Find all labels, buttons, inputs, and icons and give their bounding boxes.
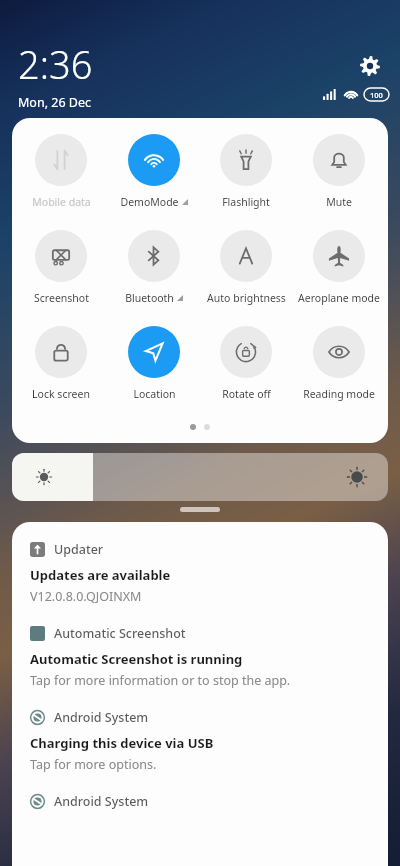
staticText: Mon, 26 Dec — [18, 94, 91, 111]
button[interactable]: Settings — [354, 50, 386, 82]
staticText: Updater — [54, 541, 104, 558]
button[interactable]: Automatic Screenshot — [30, 625, 372, 689]
staticText: Mute — [326, 195, 352, 209]
staticText: 100 — [370, 90, 383, 100]
button[interactable]: Rotate off — [202, 326, 290, 401]
button[interactable]: Android System — [30, 709, 372, 773]
staticText: Aeroplane mode — [298, 291, 380, 305]
staticText: Android System — [54, 709, 149, 726]
staticText: Automatic Screenshot is running — [30, 650, 243, 668]
button[interactable]: Brightness — [12, 453, 388, 501]
staticText: Flashlight — [222, 195, 270, 209]
button[interactable]: Screenshot — [17, 230, 105, 305]
button[interactable]: Mute — [295, 134, 383, 209]
staticText: Rotate off — [222, 387, 271, 401]
staticText: Tap for more information or to stop the … — [30, 672, 291, 689]
button[interactable]: Auto brightness — [202, 230, 290, 305]
button[interactable]: DemoMode — [110, 134, 198, 209]
button[interactable]: Aeroplane mode — [295, 230, 383, 305]
staticText: Updates are available — [30, 566, 171, 584]
button[interactable]: Updater — [30, 541, 372, 605]
staticText: Mobile data — [32, 195, 91, 209]
button[interactable]: Bluetooth — [110, 230, 198, 305]
staticText: Tap for more options. — [30, 756, 157, 773]
staticText: Location — [133, 387, 176, 401]
staticText: Charging this device via USB — [30, 734, 214, 752]
staticText: Lock screen — [32, 387, 90, 401]
staticText: Automatic Screenshot — [54, 625, 186, 642]
button[interactable]: Mobile data — [17, 134, 105, 209]
button[interactable]: Lock screen — [17, 326, 105, 401]
staticText: Auto brightness — [207, 291, 286, 305]
button[interactable]: Android System — [30, 793, 372, 810]
staticText: Android System — [54, 793, 149, 810]
button[interactable]: Flashlight — [202, 134, 290, 209]
staticText: Bluetooth — [125, 291, 174, 305]
staticText: 2:36 — [18, 38, 93, 90]
staticText: Screenshot — [34, 291, 89, 305]
staticText: V12.0.8.0.QJOINXM — [30, 588, 142, 605]
button[interactable]: Location — [110, 326, 198, 401]
button[interactable]: Reading mode — [295, 326, 383, 401]
staticText: Reading mode — [303, 387, 375, 401]
staticText: DemoMode — [120, 195, 179, 209]
